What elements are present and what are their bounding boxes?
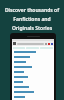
staticText: Discover thousands of: [4, 7, 60, 14]
staticText: Originals Stories: [4, 25, 60, 32]
staticText: Fanfictions and: [4, 16, 60, 23]
